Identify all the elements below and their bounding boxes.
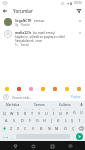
staticText: J <box>51 118 53 123</box>
button[interactable]: X <box>15 124 22 132</box>
button[interactable]: M <box>53 124 61 132</box>
button[interactable]: İ <box>76 116 83 124</box>
button[interactable]: D <box>18 116 26 124</box>
button[interactable]: Tamam <box>26 101 52 108</box>
button[interactable]: Back <box>0 6 9 15</box>
button[interactable]: Recents <box>48 142 56 150</box>
staticText: 8 <box>53 108 55 111</box>
button[interactable]: A <box>2 116 10 124</box>
button[interactable]: 2 <box>8 108 15 116</box>
button[interactable]: mafia223r <box>0 27 85 47</box>
staticText: 00:34 <box>74 1 82 5</box>
button[interactable]: Emoji <box>16 86 21 91</box>
staticText: 5 <box>32 108 34 111</box>
staticText: Kullanıcı <box>59 103 72 107</box>
button[interactable]: Ğ <box>71 108 78 116</box>
staticText: N <box>48 126 51 131</box>
staticText: İ <box>79 118 81 123</box>
button[interactable]: Like <box>77 30 83 36</box>
button[interactable]: V <box>29 124 37 132</box>
button[interactable]: H <box>41 116 48 124</box>
button[interactable]: Ö <box>61 124 69 132</box>
button[interactable]: S <box>10 116 18 124</box>
staticText: SegaNCTR <box>15 18 32 22</box>
button[interactable]: Emoji <box>4 86 9 91</box>
button[interactable]: F <box>26 116 34 124</box>
staticText: 2g Yanıtla <box>15 23 30 27</box>
button[interactable]: Ü <box>78 108 85 116</box>
staticText: D <box>21 118 24 123</box>
staticText: E <box>17 111 20 116</box>
button[interactable]: Merhaba <box>0 101 26 108</box>
button[interactable]: Switch keyboard <box>66 142 74 150</box>
button[interactable]: Emoji <box>64 86 69 91</box>
button[interactable]: K <box>55 116 62 124</box>
button[interactable]: N <box>45 124 53 132</box>
button[interactable]: Backspace <box>77 124 85 132</box>
button[interactable]: Send <box>76 133 83 140</box>
button[interactable]: SegaNCTR <box>0 15 85 27</box>
button[interactable]: B <box>37 124 45 132</box>
button[interactable]: Ç <box>69 124 77 132</box>
staticText: F <box>29 118 31 123</box>
button[interactable]: J <box>48 116 55 124</box>
button[interactable]: 7 <box>43 108 50 116</box>
button[interactable]: 0 <box>64 108 71 116</box>
staticText: K <box>57 118 60 123</box>
button[interactable]: 6 <box>36 108 43 116</box>
staticText: 9 <box>60 108 62 111</box>
button[interactable]: Emoji <box>28 86 33 91</box>
button[interactable]: L <box>62 116 69 124</box>
button[interactable]: , <box>10 133 15 140</box>
button[interactable]: Ş <box>69 116 76 124</box>
staticText: . <box>73 135 74 139</box>
button[interactable]: 3 <box>15 108 22 116</box>
staticText: , <box>12 135 13 139</box>
button[interactable]: G <box>34 116 41 124</box>
staticText: Ş <box>71 118 74 123</box>
button[interactable]: Emoji <box>76 86 81 91</box>
button[interactable]: Like <box>77 18 83 24</box>
staticText: Paylaş <box>71 95 81 99</box>
staticText: R <box>24 111 27 116</box>
staticText: P <box>66 111 69 116</box>
button[interactable]: 4 <box>22 108 29 116</box>
button[interactable]: Filter <box>74 6 83 15</box>
staticText: L <box>65 118 67 123</box>
staticText: X <box>17 126 20 131</box>
button[interactable]: 5 <box>29 108 36 116</box>
staticText: I <box>53 111 55 116</box>
staticText: 4 <box>25 108 27 111</box>
button[interactable]: Emoji <box>52 86 57 91</box>
staticText: G <box>36 118 39 123</box>
staticText: 1s Yanıtla <box>15 43 30 47</box>
staticText: T <box>31 111 34 116</box>
button[interactable]: 8 <box>50 108 57 116</box>
button[interactable]: Shift <box>0 124 8 132</box>
button[interactable]: Emoji <box>40 86 45 91</box>
button[interactable]: C <box>22 124 29 132</box>
staticText: C <box>24 126 27 131</box>
staticText: Yorumlar <box>13 8 33 14</box>
button[interactable]: 9 <box>57 108 64 116</box>
button[interactable]: 1 <box>0 108 8 116</box>
button[interactable]: Voice input <box>78 101 85 108</box>
staticText: Seviabilecek cem <box>15 38 43 42</box>
staticText: 7 <box>46 108 48 111</box>
button[interactable]: . <box>71 133 76 140</box>
button[interactable]: Home <box>29 142 37 150</box>
staticText: H <box>43 118 46 123</box>
staticText: cereza <box>33 18 44 22</box>
button[interactable]: Yorum ekle... <box>12 95 70 99</box>
button[interactable]: Kullanıcı <box>52 101 78 108</box>
staticText: Tamam <box>34 103 45 107</box>
button[interactable]: Z <box>8 124 15 132</box>
button[interactable]: Paylaş <box>70 95 82 99</box>
button[interactable]: ?123 <box>1 133 10 140</box>
staticText: Ö <box>64 126 67 131</box>
staticText: S <box>13 118 16 123</box>
staticText: Yorum ekle... <box>12 95 33 99</box>
button[interactable]: Back <box>11 142 19 150</box>
staticText: Y <box>38 111 41 116</box>
